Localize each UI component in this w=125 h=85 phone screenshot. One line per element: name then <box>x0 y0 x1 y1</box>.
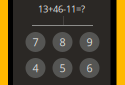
staticText: 6 <box>86 61 92 75</box>
button[interactable]: 8 <box>52 32 72 52</box>
button[interactable]: 7 <box>25 32 45 52</box>
button[interactable]: 4 <box>25 58 45 78</box>
staticText: 4 <box>32 61 38 75</box>
staticText: 5 <box>59 61 65 75</box>
staticText: 7 <box>32 35 38 49</box>
button[interactable]: 5 <box>52 58 72 78</box>
button[interactable]: 6 <box>79 58 99 78</box>
staticText: 8 <box>59 35 65 49</box>
button[interactable]: 9 <box>79 32 99 52</box>
staticText: 9 <box>86 35 92 49</box>
staticText: 13+46-11=? <box>38 3 85 15</box>
